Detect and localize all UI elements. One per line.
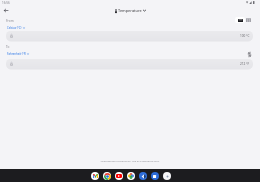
staticText: Fahrenheit (°F): [7, 52, 26, 56]
button[interactable]: Temperature: [113, 7, 148, 14]
button[interactable]: Celsius (°C): [5, 25, 27, 31]
staticText: 16:56: [2, 1, 10, 5]
button[interactable]: Swap units: [244, 49, 254, 59]
staticText: Temperature: [118, 8, 142, 13]
button[interactable]: YouTube: [115, 172, 123, 180]
button[interactable]: Fahrenheit (°F): [5, 51, 31, 57]
staticText: To: [6, 45, 10, 49]
staticText: 212 °F: [240, 62, 250, 66]
button[interactable]: Photos: [127, 172, 135, 180]
button[interactable]: Chrome: [103, 172, 111, 180]
button[interactable]: Assistant: [163, 172, 171, 180]
button[interactable]: Gmail: [91, 172, 99, 180]
button[interactable]: Back: [1, 5, 11, 15]
staticText: From: [6, 19, 14, 23]
staticText: Approximate conversions. Use as a refere…: [0, 159, 260, 162]
staticText: Celsius (°C): [7, 26, 22, 30]
button[interactable]: Meet: [151, 172, 159, 180]
button[interactable]: Card view: [235, 17, 245, 23]
button[interactable]: 100 °C: [6, 31, 253, 41]
staticText: 100 °C: [240, 34, 250, 38]
button[interactable]: Maps: [139, 172, 147, 180]
button[interactable]: 212 °F: [6, 59, 253, 69]
button[interactable]: List view: [246, 17, 251, 23]
